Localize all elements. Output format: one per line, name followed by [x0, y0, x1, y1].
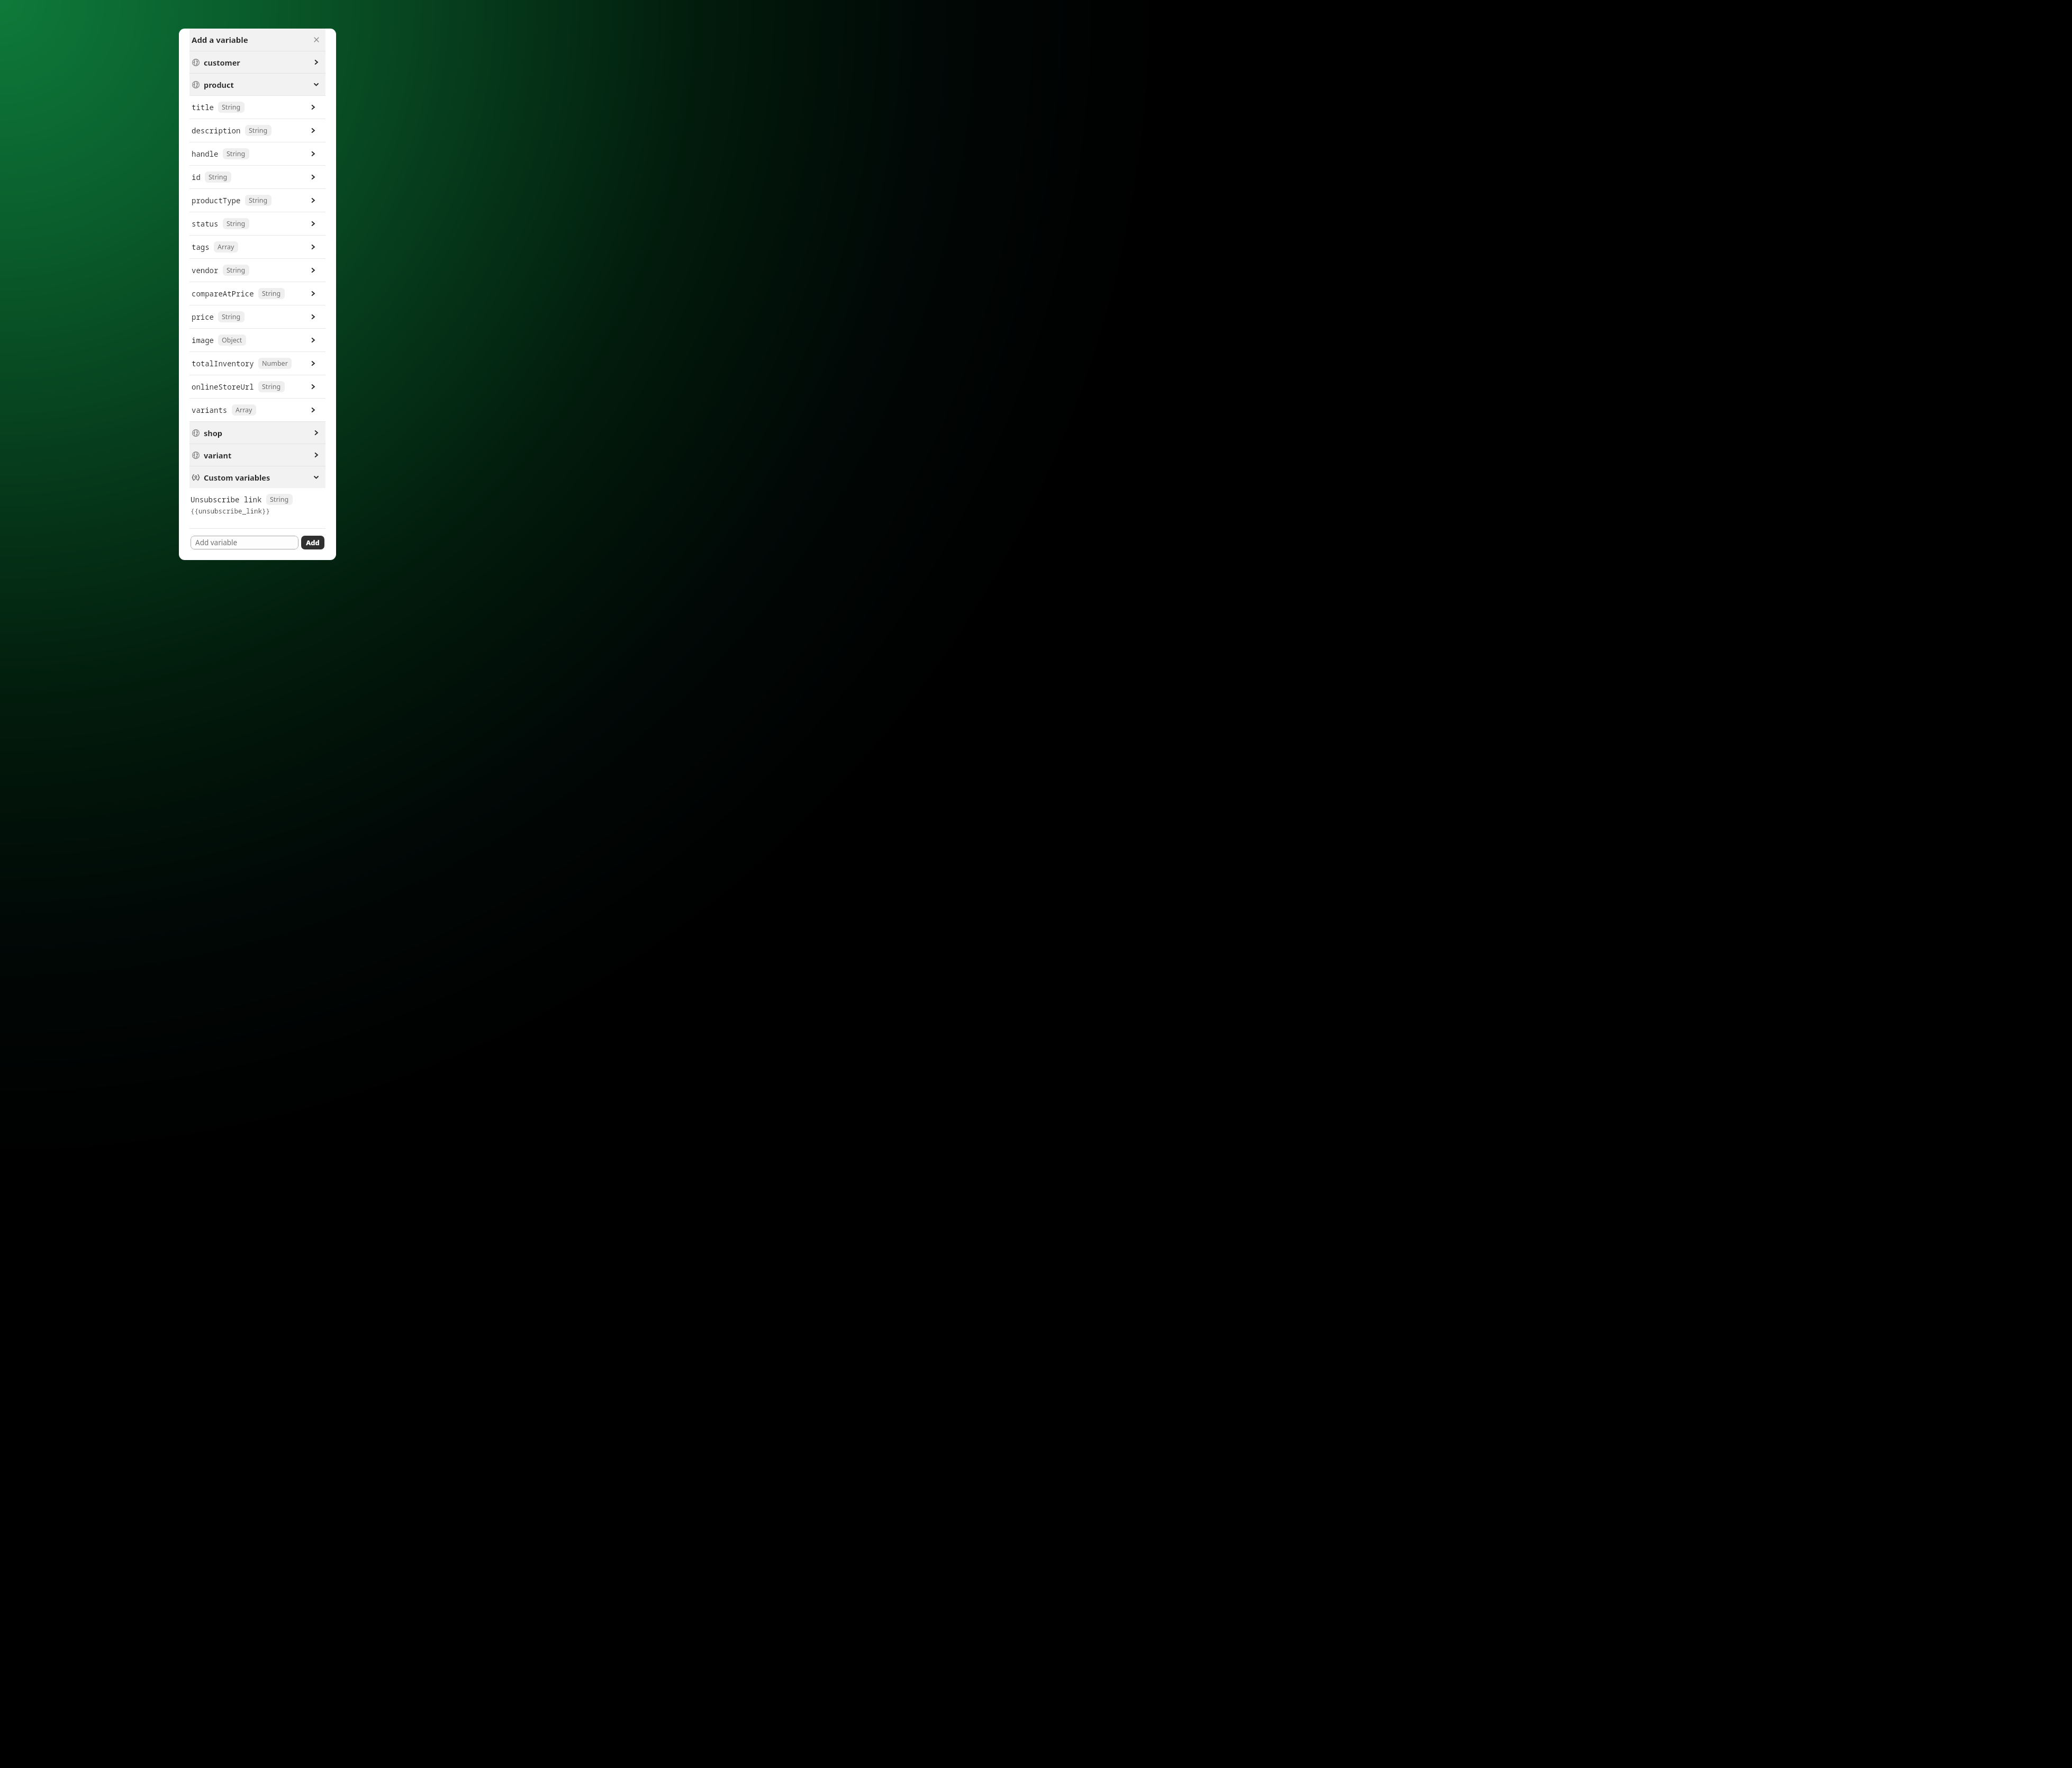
staticText: Object	[222, 336, 242, 345]
staticText: Unsubscribe link	[191, 494, 262, 504]
button[interactable]: image	[191, 329, 325, 351]
staticText: onlineStoreUrl	[192, 382, 254, 392]
staticText: String	[209, 173, 228, 182]
button[interactable]: Add	[301, 536, 324, 549]
button[interactable]: description	[191, 119, 325, 142]
staticText: description	[192, 125, 241, 136]
staticText: shop	[204, 428, 222, 438]
button[interactable]: productType	[191, 189, 325, 212]
button[interactable]: vendor	[191, 259, 325, 282]
button[interactable]: shop	[189, 422, 325, 444]
button[interactable]: product	[189, 74, 325, 95]
staticText: variant	[204, 450, 232, 461]
staticText: productType	[192, 195, 241, 205]
staticText: product	[204, 79, 234, 90]
button[interactable]: variants	[191, 399, 325, 421]
button[interactable]: id	[191, 166, 325, 188]
staticText: status	[192, 219, 219, 229]
staticText: image	[192, 335, 214, 345]
staticText: Array	[218, 242, 234, 251]
button[interactable]: price	[191, 305, 325, 328]
staticText: String	[222, 103, 241, 112]
button[interactable]: handle	[191, 142, 325, 165]
button[interactable]: Custom variables	[189, 466, 325, 488]
button[interactable]: compareAtPrice	[191, 282, 325, 305]
button[interactable]: totalInventory	[191, 352, 325, 375]
staticText: Number	[262, 359, 288, 368]
staticText: String	[249, 196, 268, 205]
staticText: String	[262, 382, 281, 391]
button[interactable]: tags	[191, 236, 325, 258]
staticText: String	[222, 312, 241, 321]
button[interactable]: Close	[311, 34, 322, 46]
staticText: customer	[204, 57, 240, 68]
staticText: vendor	[192, 265, 219, 275]
staticText: Array	[236, 405, 252, 414]
button[interactable]: status	[191, 212, 325, 235]
staticText: tags	[192, 242, 210, 252]
staticText: {{unsubscribe_link}}	[191, 507, 270, 516]
staticText: Add a variable	[192, 34, 248, 45]
staticText: handle	[192, 149, 219, 159]
staticText: Add variable	[195, 538, 238, 547]
staticText: String	[227, 219, 246, 228]
staticText: Custom variables	[204, 472, 270, 483]
button[interactable]: Add variable	[191, 536, 298, 549]
staticText: id	[192, 172, 201, 182]
staticText: String	[227, 266, 246, 275]
button[interactable]: customer	[189, 51, 325, 73]
button[interactable]: onlineStoreUrl	[191, 375, 325, 398]
staticText: String	[227, 149, 246, 158]
staticText: variants	[192, 405, 228, 415]
staticText: compareAtPrice	[192, 288, 254, 299]
staticText: String	[249, 126, 268, 135]
staticText: title	[192, 102, 214, 112]
staticText: price	[192, 312, 214, 322]
staticText: Add	[306, 538, 320, 547]
button[interactable]: title	[191, 96, 325, 119]
staticText: String	[262, 289, 281, 298]
button[interactable]: Unsubscribe link	[189, 488, 325, 516]
staticText: String	[270, 495, 289, 504]
button[interactable]: variant	[189, 444, 325, 466]
staticText: totalInventory	[192, 358, 254, 368]
